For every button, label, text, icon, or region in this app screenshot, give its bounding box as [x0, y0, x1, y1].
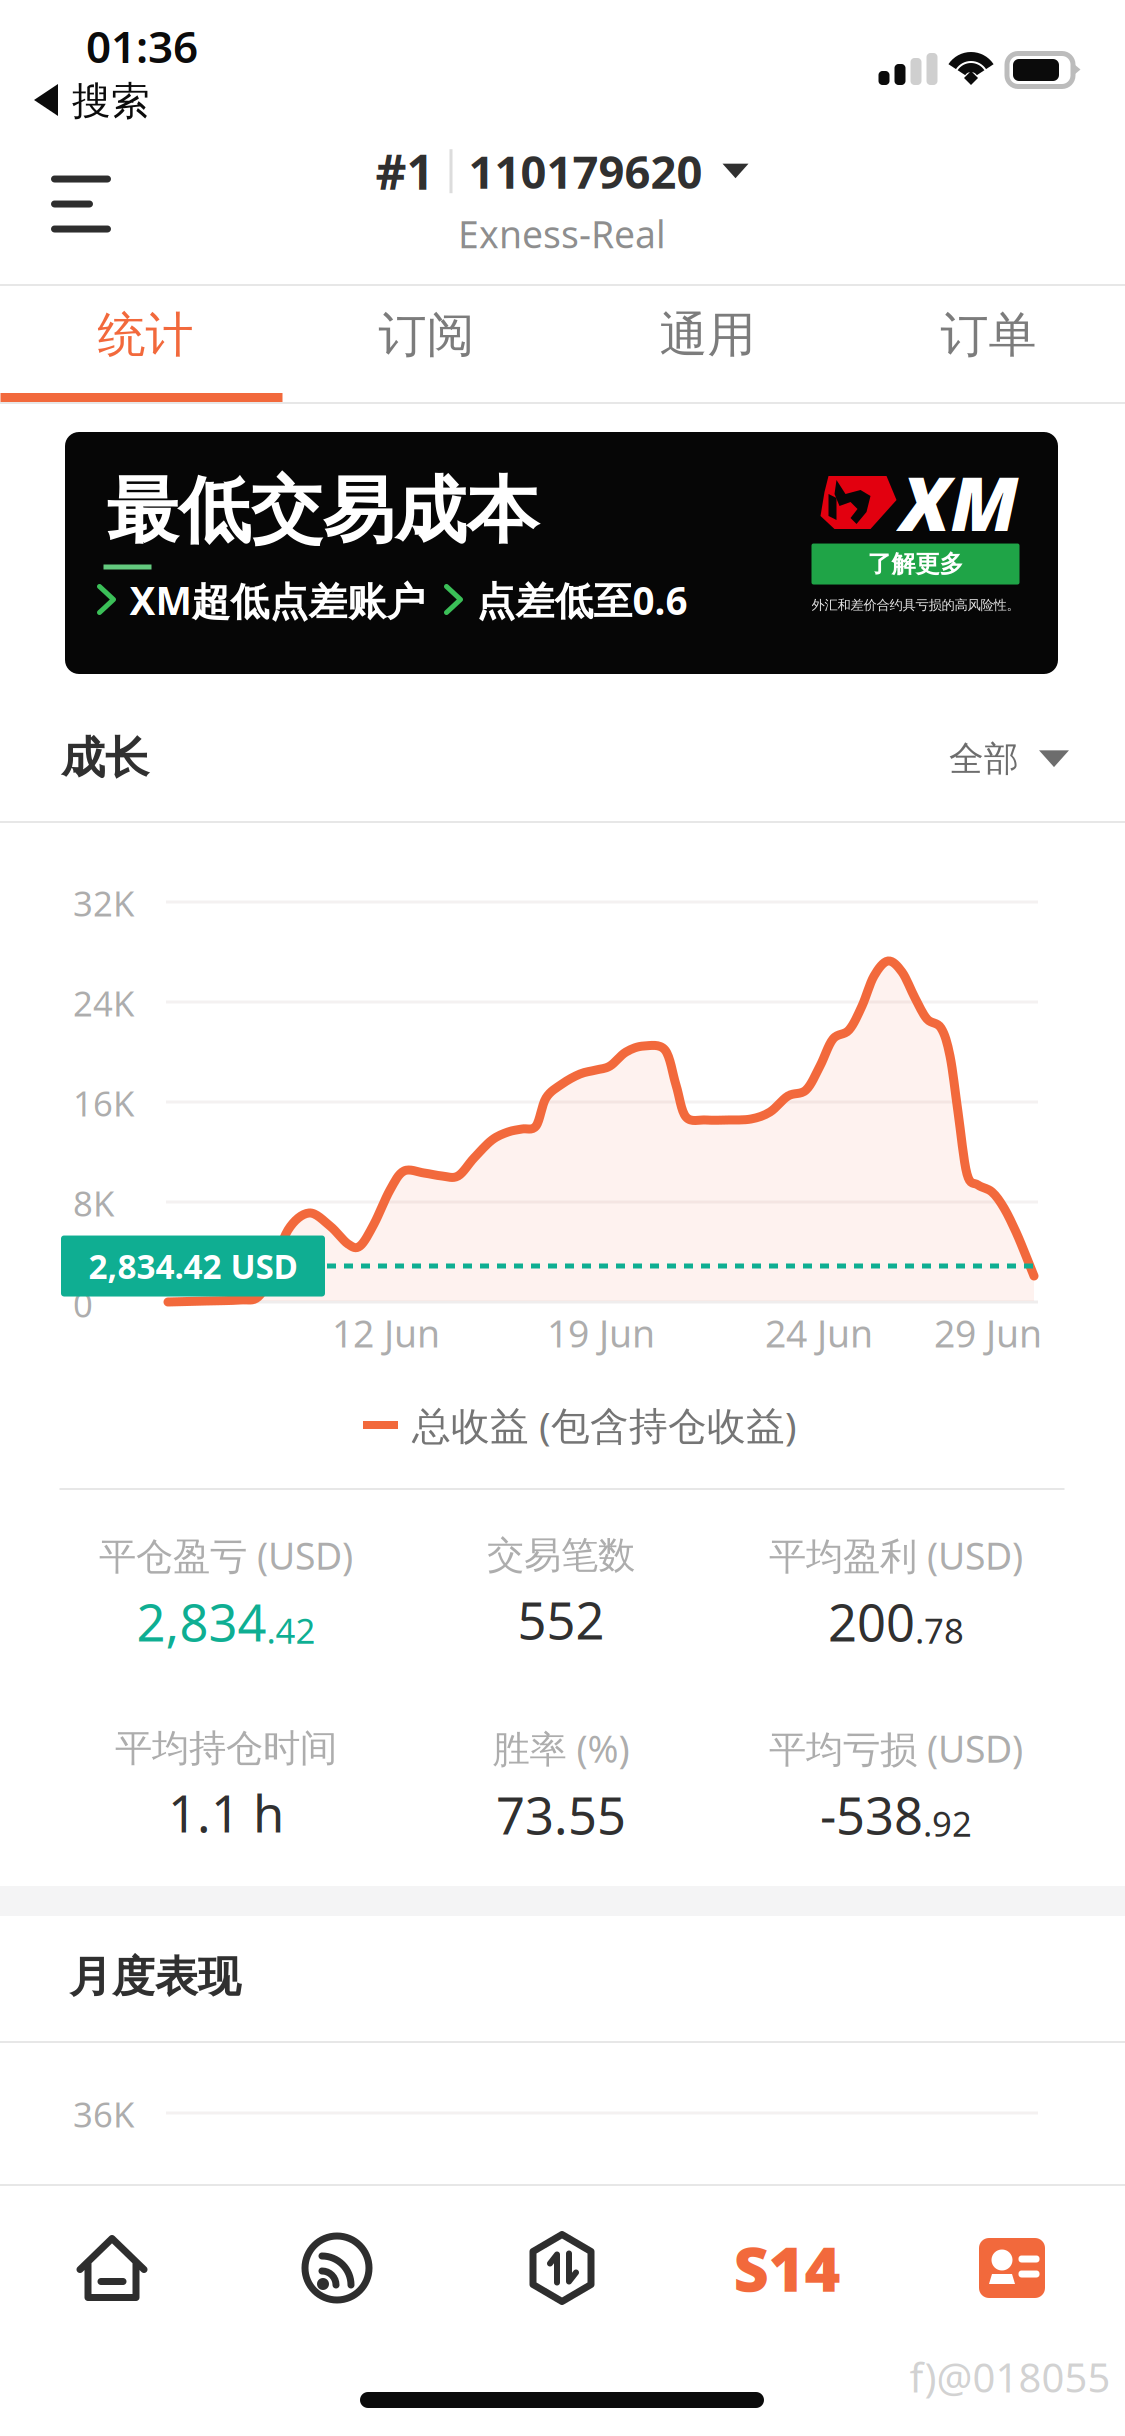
staticText: 点差低至0.6 [476, 574, 687, 626]
button[interactable]: 订阅 [281, 286, 562, 404]
staticText: 200 [828, 1588, 915, 1655]
staticText: .42 [266, 1607, 315, 1653]
button[interactable]: 通用 [562, 286, 843, 404]
staticText: 73.55 [496, 1781, 626, 1848]
staticText: 订阅 [378, 305, 474, 364]
staticText: 搜索 [72, 77, 150, 125]
staticText: 2,834.42 USD [88, 1244, 297, 1288]
staticText: 32K [73, 880, 134, 926]
staticText: Exness-Real [458, 209, 666, 259]
staticText: XM [900, 452, 1018, 552]
button[interactable]: Quotes [224, 2193, 449, 2343]
button[interactable]: Trade [449, 2193, 674, 2343]
staticText: 交易笔数 [487, 1532, 635, 1578]
staticText: 全部 [949, 738, 1019, 780]
button[interactable]: #1 [375, 139, 748, 259]
button[interactable]: 订单 [843, 286, 1124, 404]
staticText: #1 [375, 139, 433, 203]
staticText: 外汇和差价合约具亏损的高风险性。 [811, 597, 1019, 613]
staticText: 16K [73, 1080, 134, 1126]
staticText: 01:36 [86, 17, 198, 75]
staticText: 胜率 (%) [492, 1724, 629, 1773]
staticText: 24 Jun [765, 1308, 873, 1358]
staticText: f)@018055 [909, 2350, 1110, 2403]
staticText: 成长 [61, 731, 149, 785]
staticText: 552 [517, 1586, 604, 1654]
button[interactable]: 最低交易成本 [65, 432, 1058, 674]
staticText: 平均持仓时间 [115, 1725, 337, 1771]
staticText: S14 [733, 2227, 840, 2309]
staticText: 平仓盈亏 (USD) [99, 1531, 353, 1580]
staticText: 2,834 [136, 1588, 266, 1655]
staticText: 19 Jun [547, 1308, 655, 1358]
staticText: 110179620 [468, 141, 702, 201]
staticText: 24K [73, 980, 134, 1026]
button[interactable]: Profile [899, 2193, 1124, 2343]
button[interactable]: 统计 [0, 286, 281, 404]
staticText: -538 [820, 1781, 923, 1848]
staticText: 12 Jun [332, 1308, 440, 1358]
staticText: 最低交易成本 [106, 467, 538, 555]
staticText: 统计 [97, 305, 193, 364]
staticText: 订单 [940, 305, 1036, 364]
button[interactable]: 搜索 [0, 70, 176, 132]
staticText: .92 [923, 1800, 972, 1846]
staticText: 了解更多 [867, 549, 963, 579]
button[interactable]: Menu [51, 145, 171, 263]
staticText: 总收益 (包含持仓收益) [412, 1399, 797, 1451]
staticText: 36K [73, 2091, 134, 2137]
staticText: 平均亏损 (USD) [769, 1724, 1023, 1773]
button[interactable]: 全部 [933, 724, 1085, 794]
staticText: 月度表现 [69, 1951, 241, 2003]
staticText: 1.1 h [168, 1779, 284, 1847]
button[interactable]: Statistics [674, 2193, 899, 2343]
staticText: 29 Jun [934, 1308, 1042, 1358]
button[interactable]: Home [0, 2193, 224, 2343]
staticText: 8K [73, 1180, 114, 1226]
staticText: .78 [915, 1607, 964, 1653]
staticText: 0 [73, 1281, 93, 1327]
staticText: 通用 [659, 305, 755, 364]
staticText: XM超低点差账户 [129, 574, 425, 626]
staticText: 平均盈利 (USD) [769, 1531, 1023, 1580]
